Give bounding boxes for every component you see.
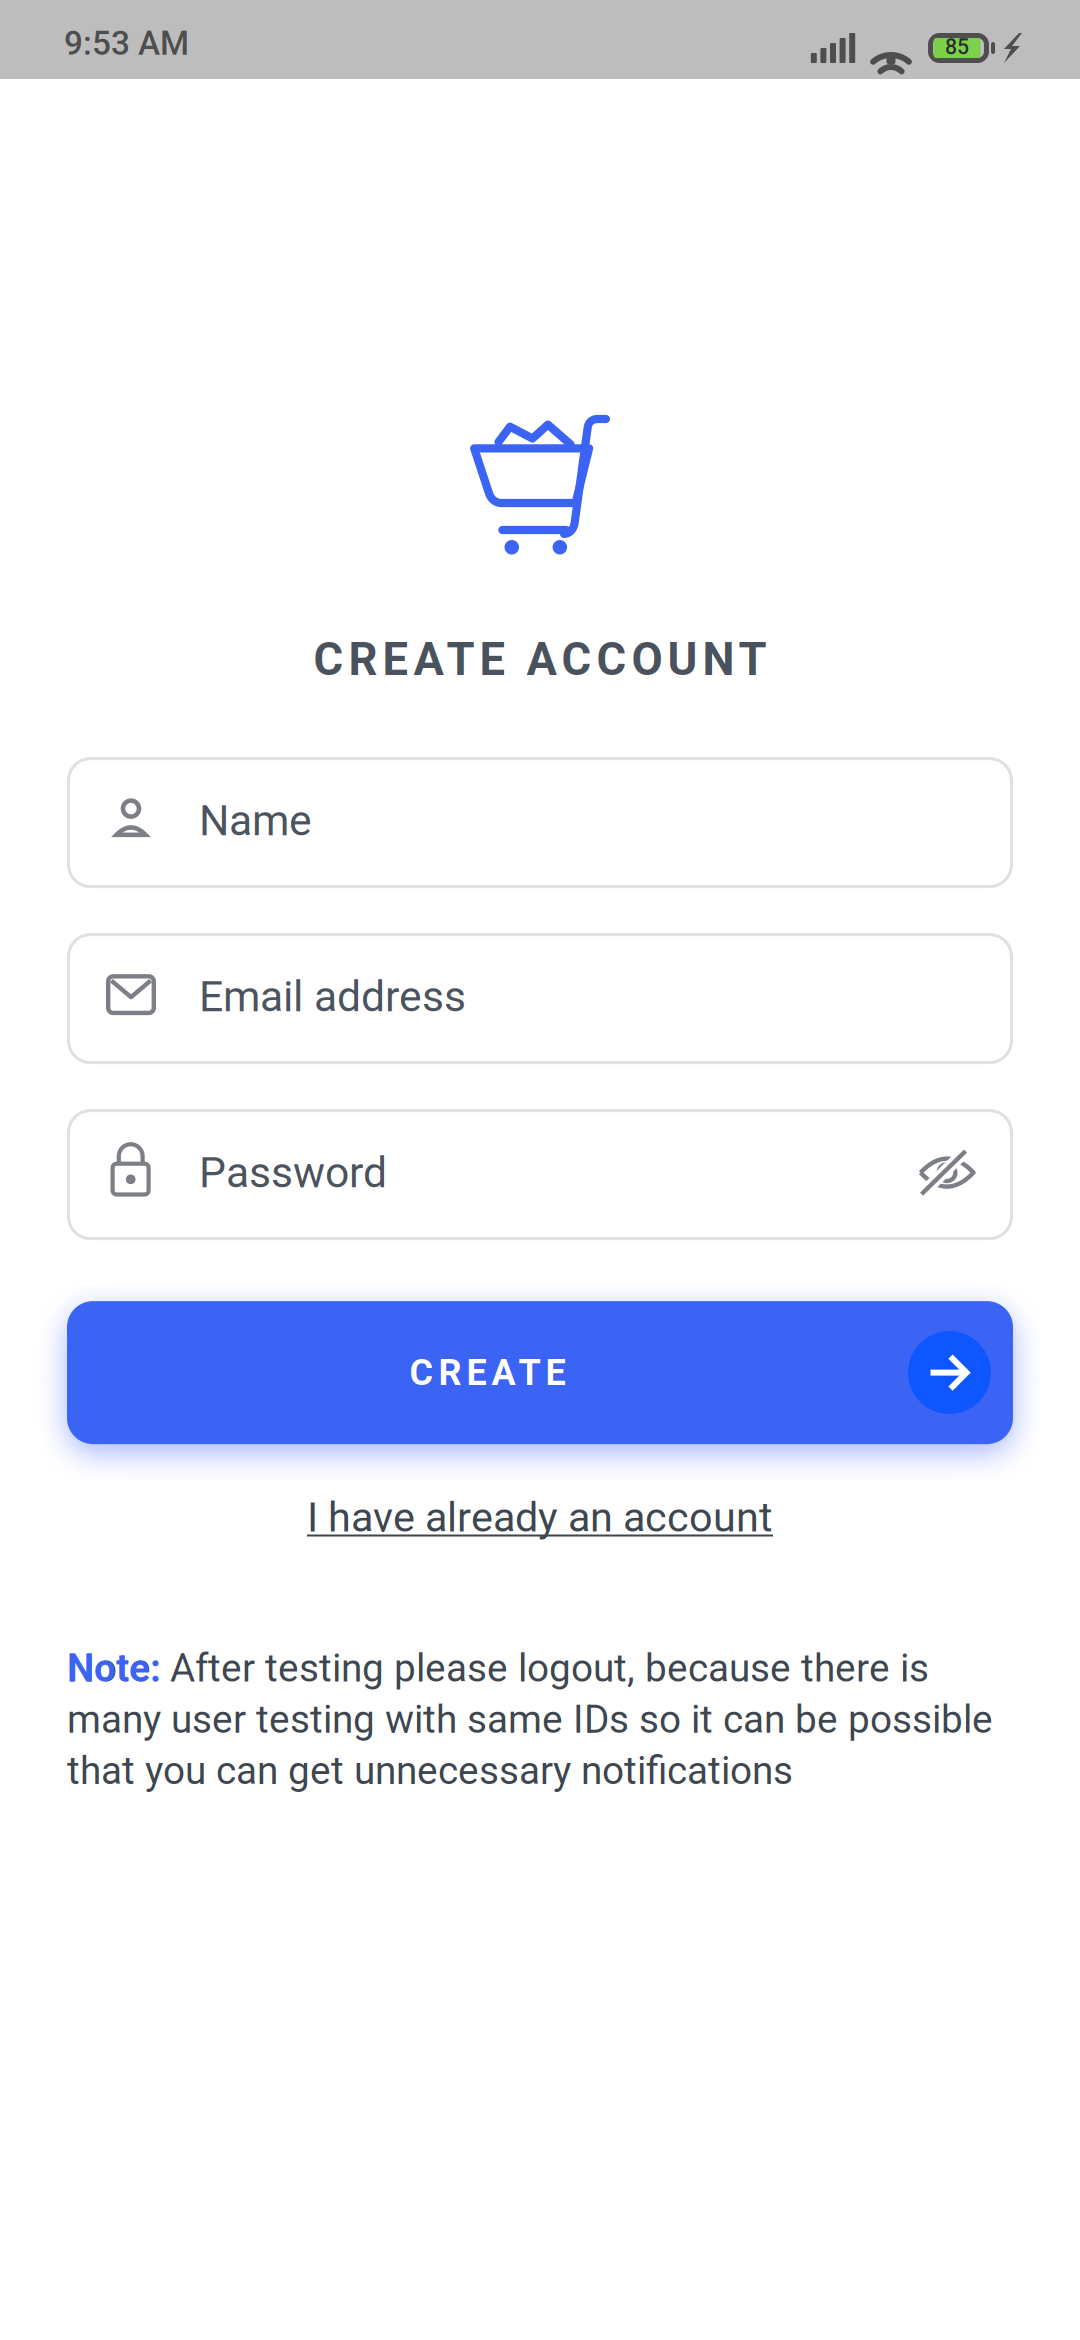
- button[interactable]: Name: [67, 757, 1013, 888]
- staticText: 85: [945, 34, 969, 59]
- button[interactable]: CREATE: [67, 1301, 1013, 1444]
- staticText: Note: After testing please logout, becau…: [67, 1646, 929, 1691]
- staticText: I have already an account: [307, 1493, 773, 1541]
- staticText: CREATE ACCOUNT: [313, 633, 766, 686]
- staticText: that you can get unnecessary notificatio…: [67, 1748, 793, 1793]
- staticText: Password: [199, 1148, 387, 1198]
- staticText: CREATE: [409, 1351, 565, 1394]
- staticText: 9:53 AM: [64, 24, 189, 63]
- staticText: Email address: [199, 972, 466, 1022]
- button[interactable]: Password: [67, 1109, 1013, 1240]
- staticText: Name: [199, 796, 312, 846]
- button[interactable]: Email address: [67, 933, 1013, 1064]
- staticText: many user testing with same IDs so it ca…: [67, 1697, 993, 1742]
- staticText: Note:: [67, 1646, 161, 1691]
- button[interactable]: I have already an account: [307, 1493, 773, 1541]
